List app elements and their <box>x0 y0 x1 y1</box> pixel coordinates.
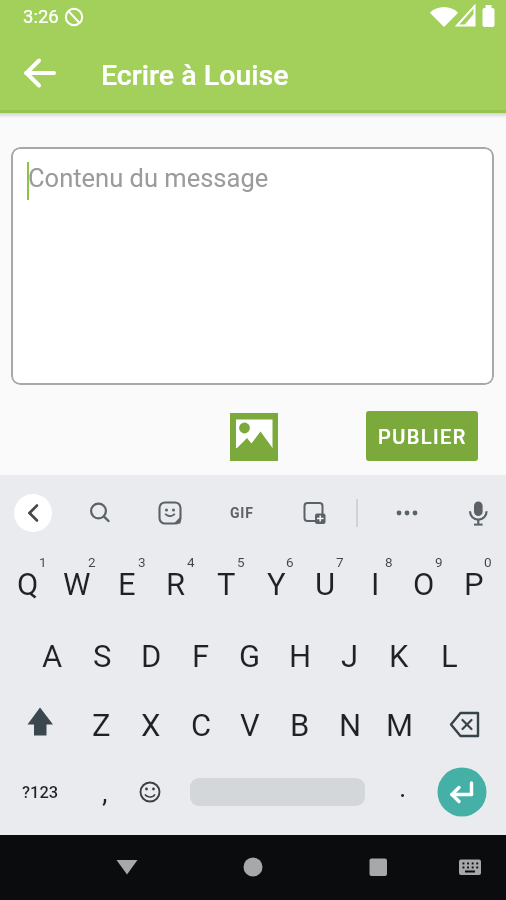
staticText: A <box>42 638 63 674</box>
staticText: J <box>341 638 359 674</box>
staticText: G <box>239 638 261 674</box>
staticText: K <box>389 638 409 674</box>
button[interactable]: Q <box>0 556 63 612</box>
button[interactable] <box>103 843 151 891</box>
button[interactable]: E <box>92 556 162 612</box>
button[interactable] <box>354 843 402 891</box>
button[interactable]: O <box>389 556 459 612</box>
button[interactable]: T <box>191 556 261 612</box>
button[interactable]: , <box>70 764 140 820</box>
button[interactable] <box>441 701 489 749</box>
staticText: PUBLIER <box>378 425 467 448</box>
button[interactable] <box>16 49 64 97</box>
button[interactable] <box>16 701 64 749</box>
staticText: O <box>413 566 435 602</box>
staticText: E <box>118 566 136 602</box>
button[interactable]: K <box>364 628 434 684</box>
button[interactable]: H <box>265 628 335 684</box>
button[interactable]: GIF <box>207 485 277 541</box>
staticText: U <box>315 566 336 602</box>
button[interactable]: N <box>315 697 385 753</box>
button[interactable] <box>14 494 52 532</box>
staticText: D <box>141 638 162 674</box>
staticText: H <box>289 638 312 674</box>
button[interactable]: S <box>67 628 137 684</box>
staticText: Contenu du message <box>28 163 269 193</box>
button[interactable]: . <box>368 759 438 815</box>
staticText: C <box>191 707 212 743</box>
staticText: B <box>290 707 310 743</box>
button[interactable]: M <box>365 697 435 753</box>
staticText: 1 <box>39 554 47 570</box>
button[interactable]: I <box>340 556 410 612</box>
button[interactable] <box>291 489 339 537</box>
staticText: W <box>63 566 91 602</box>
staticText: N <box>339 707 362 743</box>
button[interactable]: L <box>414 628 484 684</box>
button[interactable]: PUBLIER <box>366 411 478 461</box>
button[interactable]: V <box>215 697 285 753</box>
button[interactable] <box>446 843 494 891</box>
staticText: 5 <box>237 554 245 570</box>
button[interactable] <box>76 489 124 537</box>
staticText: Ecrire à Louise <box>101 59 289 92</box>
button[interactable]: ?123 <box>5 764 75 820</box>
staticText: Z <box>92 707 111 743</box>
staticText: F <box>192 638 210 674</box>
button[interactable]: Z <box>66 697 136 753</box>
staticText: , <box>102 776 108 809</box>
staticText: V <box>240 707 260 743</box>
button[interactable]: G <box>215 628 285 684</box>
staticText: Y <box>267 566 286 602</box>
staticText: 7 <box>336 554 344 570</box>
staticText: 4 <box>187 554 195 570</box>
button[interactable]: Y <box>241 556 311 612</box>
button[interactable] <box>146 489 194 537</box>
staticText: M <box>386 707 414 743</box>
staticText: L <box>441 638 458 674</box>
button[interactable]: A <box>17 628 87 684</box>
button[interactable] <box>230 413 278 461</box>
button[interactable]: P <box>439 556 506 612</box>
staticText: Q <box>17 566 39 602</box>
staticText: 9 <box>435 554 443 570</box>
staticText: P <box>464 566 484 602</box>
button[interactable]: X <box>116 697 186 753</box>
button[interactable] <box>126 768 174 816</box>
staticText: ?123 <box>22 783 59 802</box>
button[interactable] <box>437 767 487 817</box>
staticText: R <box>166 566 186 602</box>
staticText: I <box>371 566 380 602</box>
button[interactable]: B <box>265 697 335 753</box>
staticText: GIF <box>230 505 254 521</box>
button[interactable]: W <box>42 556 112 612</box>
staticText: 3:26 <box>23 6 59 28</box>
staticText: 0 <box>484 554 492 570</box>
button[interactable]: D <box>116 628 186 684</box>
button[interactable]: U <box>290 556 360 612</box>
button[interactable] <box>383 489 431 537</box>
button[interactable]: F <box>166 628 236 684</box>
button[interactable] <box>11 147 494 385</box>
button[interactable]: R <box>141 556 211 612</box>
staticText: 8 <box>385 554 393 570</box>
staticText: 6 <box>286 554 294 570</box>
staticText: 3 <box>138 554 146 570</box>
button[interactable] <box>454 489 502 537</box>
staticText: S <box>93 638 112 674</box>
staticText: T <box>217 566 236 602</box>
button[interactable]: C <box>166 697 236 753</box>
staticText: . <box>399 771 407 804</box>
staticText: X <box>141 707 161 743</box>
button[interactable] <box>229 843 277 891</box>
staticText: 2 <box>88 554 96 570</box>
button[interactable]: J <box>315 628 385 684</box>
